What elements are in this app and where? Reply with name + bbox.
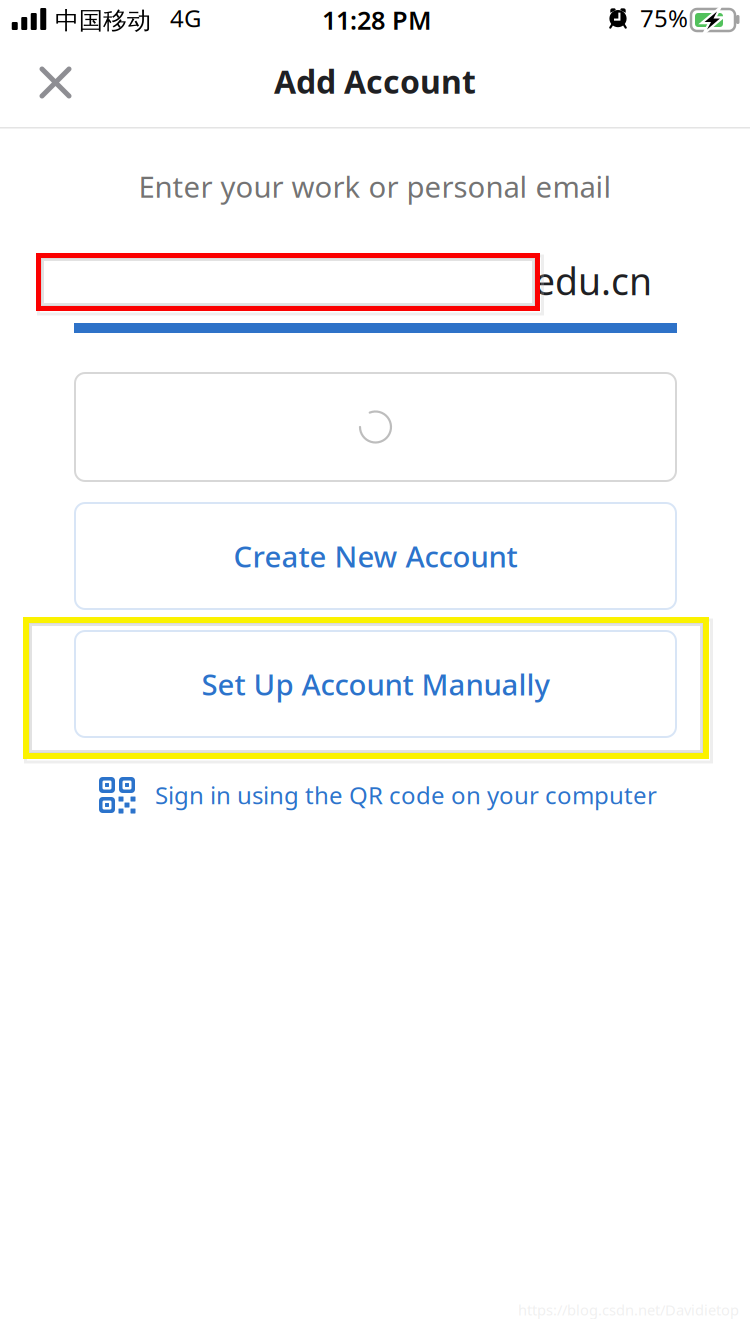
button[interactable]: Close: [39, 66, 72, 99]
staticText: 75%: [640, 2, 688, 34]
staticText: 11:28 PM: [322, 3, 432, 37]
staticText: Sign in using the QR code on your comput…: [155, 779, 657, 811]
staticText: 中国移动: [55, 6, 151, 35]
staticText: https://blog.csdn.net/Davidietop: [518, 1300, 739, 1319]
staticText: Set Up Account Manually: [201, 664, 549, 703]
staticText: 4G: [170, 2, 201, 34]
staticText: edu.cn: [534, 256, 652, 306]
button[interactable]: Set Up Account Manually: [74, 630, 677, 738]
staticText: Enter your work or personal email: [138, 167, 611, 206]
staticText: Create New Account: [233, 536, 517, 575]
button[interactable]: Create New Account: [74, 502, 677, 610]
staticText: Add Account: [274, 60, 476, 102]
button[interactable]: Sign in using the QR code on your comput…: [99, 777, 657, 813]
